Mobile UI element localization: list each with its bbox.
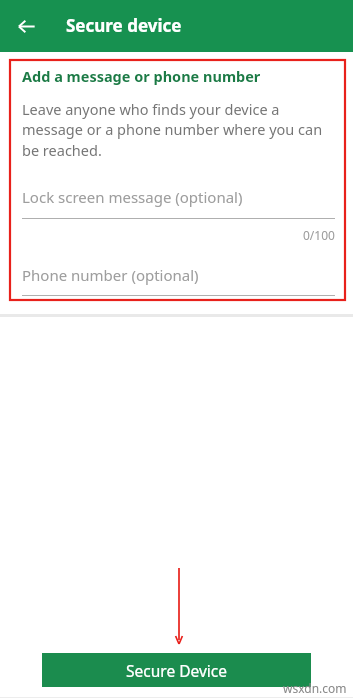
button[interactable]: Lock screen message (optional) [22,187,335,219]
staticText: Secure device [66,14,182,37]
staticText: Add a message or phone number [22,66,261,86]
button[interactable]: Secure Device [42,653,311,687]
staticText: Leave anyone who finds your device a mes… [22,99,335,161]
button[interactable]: Back [10,10,42,42]
staticText: Secure Device [126,660,227,681]
staticText: Phone number (optional) [22,265,199,285]
staticText: 0/100 [303,227,335,243]
button[interactable]: Phone number (optional) [22,265,335,296]
staticText: Lock screen message (optional) [22,187,243,207]
staticText: wsxdn.com [283,680,347,696]
